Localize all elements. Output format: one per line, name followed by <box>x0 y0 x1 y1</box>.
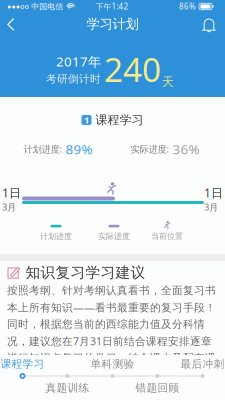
staticText: 错题回顾 <box>135 381 179 394</box>
staticText: 计划进度: <box>23 143 62 155</box>
staticText: 3月 <box>204 201 218 213</box>
button[interactable]: 返回 <box>0 10 25 38</box>
staticText: 36% <box>172 140 199 158</box>
staticText: 实际进度 <box>98 231 130 241</box>
staticText: 1日 <box>204 185 223 201</box>
staticText: 天 <box>162 74 174 89</box>
staticText: 知识复习学习建议 <box>25 263 145 281</box>
staticText: 课程学习 <box>0 357 44 370</box>
button[interactable]: 课程学习 <box>0 355 44 400</box>
staticText: 当前位置 <box>151 231 183 241</box>
staticText: 中国电信 <box>31 2 63 11</box>
staticText: 真题训练 <box>45 381 89 394</box>
staticText: 下午1:42 <box>95 1 128 12</box>
staticText: 单科测验 <box>90 357 134 370</box>
staticText: 最后冲刺 <box>180 357 224 370</box>
staticText: 学习计划 <box>86 16 138 32</box>
button[interactable]: 最后冲刺 <box>180 355 224 400</box>
staticText: 1 <box>84 114 89 126</box>
button[interactable]: 错题回顾 <box>135 355 179 400</box>
staticText: 按照考纲、针对考纲认真看书，全面复习书本上所有知识——看书最重要的复习手段！同时… <box>7 284 216 381</box>
button[interactable]: 真题训练 <box>45 355 89 400</box>
button[interactable]: 通知 <box>195 11 223 39</box>
staticText: 89% <box>65 140 92 158</box>
staticText: 考研倒计时 <box>46 72 101 85</box>
staticText: 1日 <box>2 185 21 201</box>
staticText: 2017年 <box>56 53 101 70</box>
button[interactable]: 单科测验 <box>90 355 134 400</box>
staticText: 课程学习 <box>95 113 143 127</box>
staticText: 计划进度 <box>40 231 72 241</box>
staticText: 3月 <box>2 201 16 213</box>
staticText: 86% <box>179 1 196 12</box>
staticText: 实际进度: <box>130 143 169 155</box>
staticText: 240 <box>104 47 161 91</box>
